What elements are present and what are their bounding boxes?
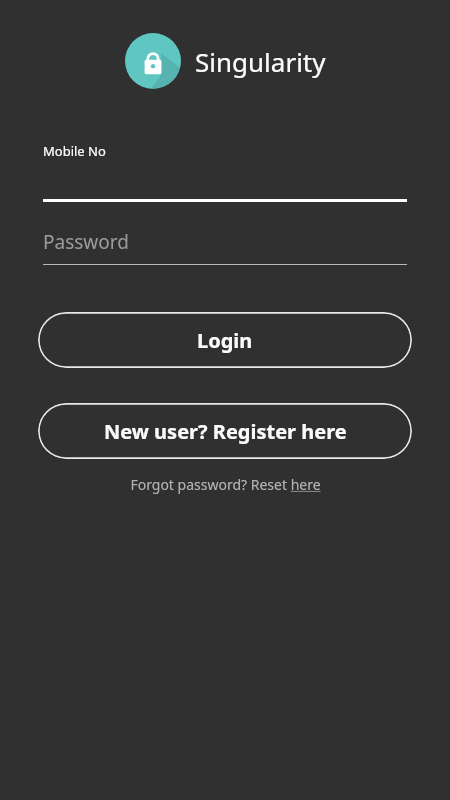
staticText: Singularity <box>195 44 326 79</box>
staticText: Login <box>197 327 253 354</box>
button[interactable]: Mobile No <box>43 142 407 202</box>
staticText: Password <box>43 229 129 255</box>
button[interactable]: Password <box>43 229 407 265</box>
staticText: Mobile No <box>43 142 106 160</box>
button[interactable]: New user? Register here <box>38 403 412 459</box>
staticText: New user? Register here <box>104 418 347 445</box>
other: Singularity app logo <box>125 33 181 89</box>
button[interactable]: Forgot password? Reset here <box>122 472 329 497</box>
button[interactable]: Login <box>38 312 412 368</box>
